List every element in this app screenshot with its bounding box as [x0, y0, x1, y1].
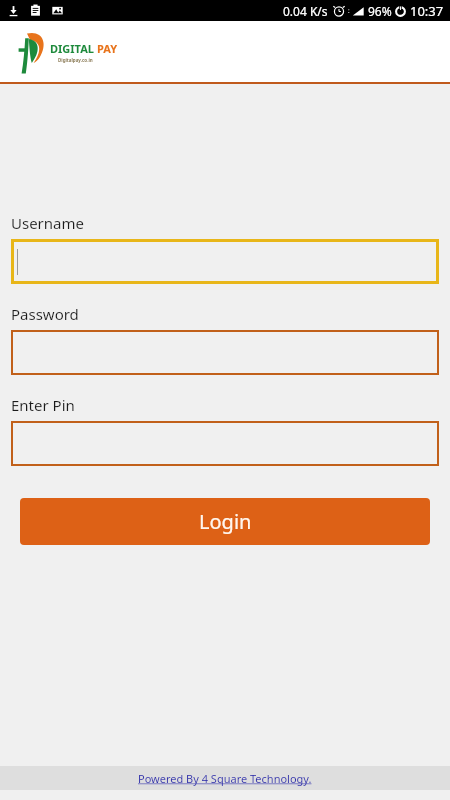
button[interactable]: Password input: [11, 330, 439, 375]
staticText: Powered By 4 Square Technology.: [138, 771, 312, 786]
button[interactable]: Username input: [11, 239, 439, 284]
staticText: 96%: [368, 3, 392, 19]
staticText: Digitalpay.co.in: [58, 57, 93, 63]
button[interactable]: Login: [20, 498, 430, 545]
button[interactable]: Enter Pin input: [11, 421, 439, 466]
staticText: DIGITAL: [50, 41, 94, 56]
button[interactable]: Powered By 4 Square Technology.: [138, 771, 312, 786]
staticText: PAY: [97, 41, 118, 56]
staticText: Login: [199, 508, 252, 535]
staticText: Password: [11, 304, 79, 324]
staticText: Username: [11, 213, 84, 233]
staticText: Enter Pin: [11, 395, 75, 415]
staticText: 0.04 K/s: [283, 3, 328, 19]
staticText: 10:37: [410, 2, 444, 20]
